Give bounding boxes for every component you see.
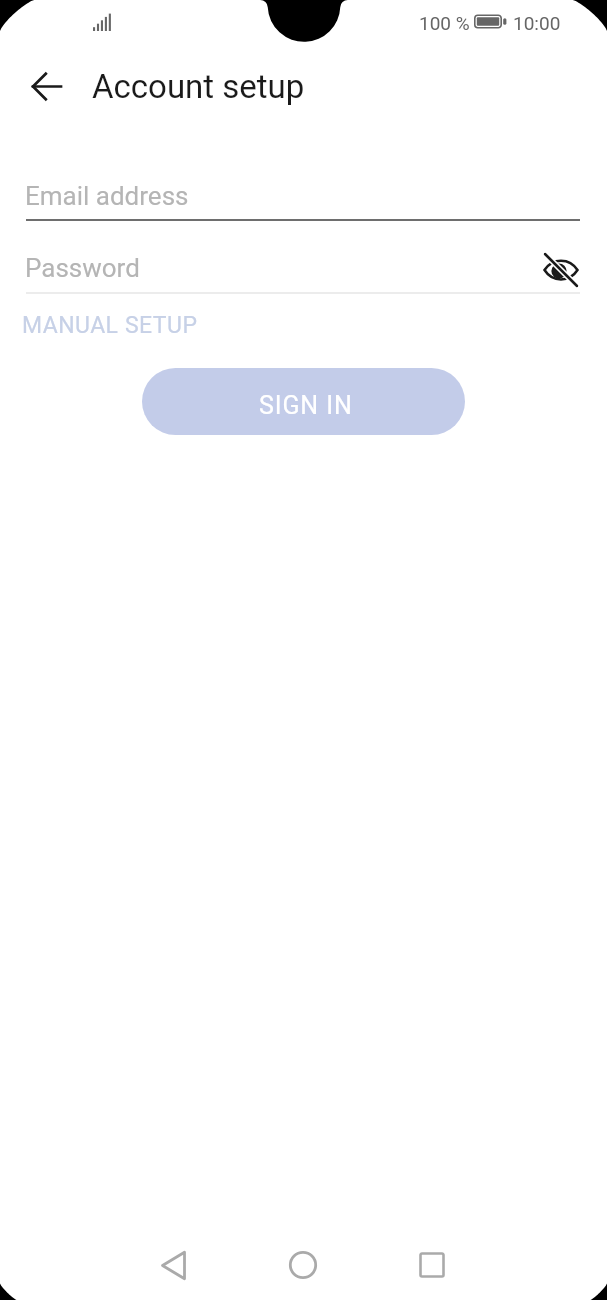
staticText: Account setup [92, 67, 305, 106]
button[interactable]: Navigate up [19, 58, 75, 114]
button[interactable]: MANUAL [22, 312, 198, 339]
button[interactable]: Recent apps [404, 1237, 460, 1293]
staticText: 10:00 [513, 12, 561, 34]
button[interactable]: Home [275, 1237, 331, 1293]
staticText: Email address [25, 181, 189, 211]
staticText: MANUAL [22, 312, 119, 339]
staticText: SIGN IN [259, 391, 353, 420]
button[interactable]: SIGN IN [142, 368, 465, 435]
staticText: Password [25, 253, 140, 283]
staticText: 100 % [419, 12, 470, 34]
button[interactable]: Back [145, 1237, 201, 1293]
button[interactable]: Email address [25, 174, 579, 220]
staticText: SETUP [125, 312, 198, 339]
button[interactable]: Show password [537, 246, 585, 294]
